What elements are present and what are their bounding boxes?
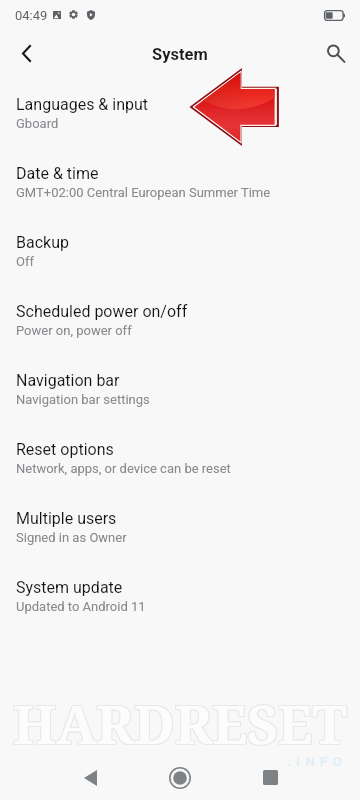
- staticText: HARDRESET: [13, 687, 347, 759]
- staticText: HARDRESET: [13, 688, 347, 760]
- staticText: Reset options: [16, 440, 114, 459]
- staticText: HARDRESET: [12, 686, 346, 758]
- button[interactable]: Multiple users: [0, 509, 360, 578]
- staticText: 04:49: [15, 8, 48, 23]
- staticText: Scheduled power on/off: [16, 302, 188, 321]
- staticText: System update: [16, 578, 123, 597]
- staticText: Off: [16, 254, 34, 269]
- staticText: Signed in as Owner: [16, 530, 127, 545]
- staticText: Gboard: [16, 116, 59, 131]
- staticText: Power on, power off: [16, 323, 132, 338]
- button[interactable]: Navigate up: [2, 29, 50, 77]
- staticText: Updated to Android 11: [16, 599, 146, 614]
- staticText: Navigation bar settings: [16, 392, 150, 407]
- button[interactable]: Scheduled power on/off: [0, 302, 360, 371]
- staticText: HARDRESET: [14, 687, 348, 759]
- staticText: Date & time: [16, 164, 99, 183]
- button[interactable]: Back: [66, 755, 114, 800]
- button[interactable]: Home: [156, 755, 204, 800]
- staticText: Multiple users: [16, 509, 117, 528]
- staticText: GMT+02:00 Central European Summer Time: [16, 185, 271, 200]
- staticText: HARDRESET: [12, 687, 346, 759]
- button[interactable]: Search: [311, 29, 359, 77]
- staticText: System: [152, 45, 208, 64]
- button[interactable]: Backup: [0, 233, 360, 302]
- staticText: Network, apps, or device can be reset: [16, 461, 231, 476]
- button[interactable]: Navigation bar: [0, 371, 360, 440]
- button[interactable]: Reset options: [0, 440, 360, 509]
- button[interactable]: Languages & input: [0, 95, 360, 164]
- button[interactable]: System update: [0, 578, 360, 647]
- button[interactable]: Recent apps: [246, 755, 294, 800]
- button[interactable]: Date & time: [0, 164, 360, 233]
- staticText: Backup: [16, 233, 69, 252]
- staticText: HARDRESET: [14, 686, 348, 758]
- staticText: Languages & input: [16, 95, 149, 114]
- staticText: .INFO: [287, 753, 348, 769]
- staticText: Navigation bar: [16, 371, 120, 390]
- staticText: HARDRESET: [14, 688, 348, 760]
- staticText: HARDRESET: [12, 688, 346, 760]
- staticText: HARDRESET: [13, 686, 347, 758]
